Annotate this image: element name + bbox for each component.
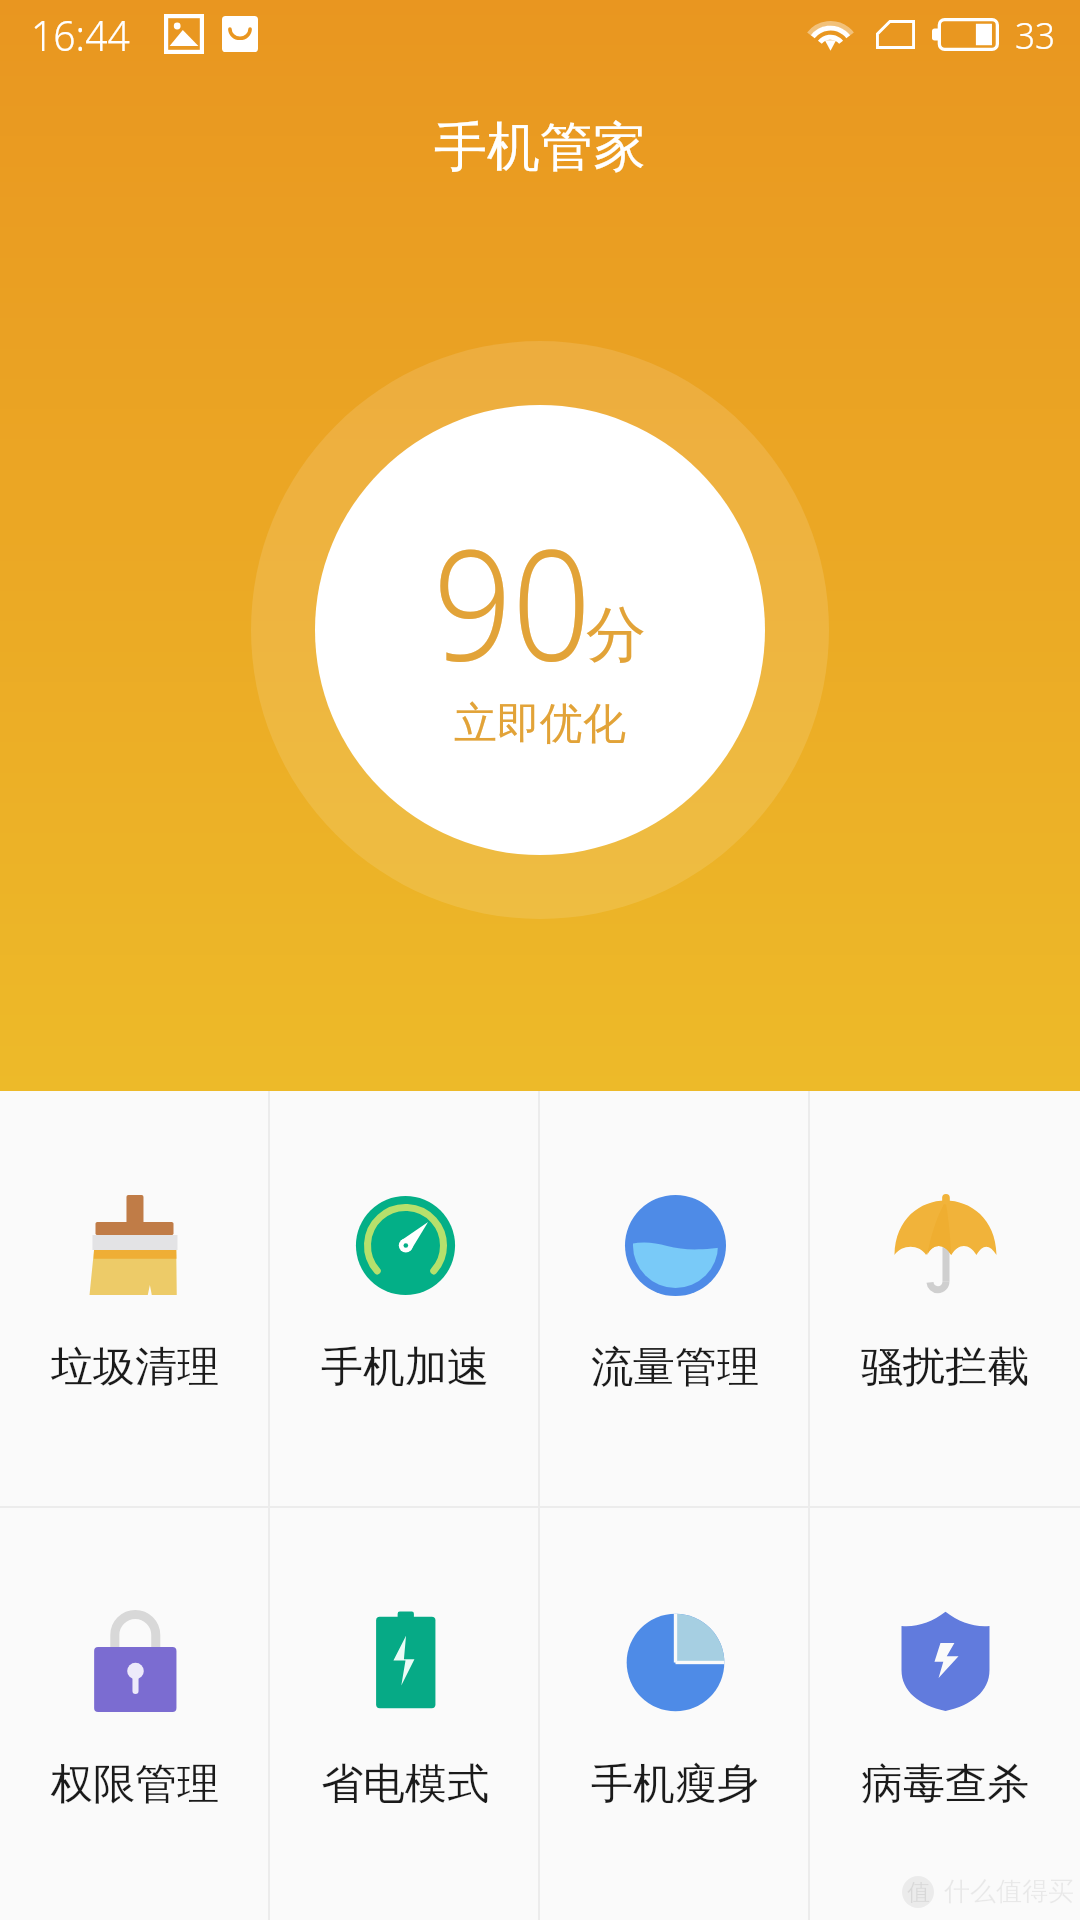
staticText: 什么值得买 [944,1875,1074,1908]
button[interactable]: 权限管理 [0,1508,270,1920]
button[interactable]: 骚扰拦截 [810,1091,1080,1506]
staticText: 33 [1015,9,1056,59]
staticText: 省电模式 [321,1758,489,1811]
button[interactable]: 手机瘦身 [540,1508,810,1920]
staticText: 90 [433,496,591,704]
button[interactable]: 流量管理 [540,1091,810,1506]
staticText: 垃圾清理 [51,1341,219,1394]
button[interactable]: 90分 立即优化 [315,405,765,855]
staticText: 16:44 [31,6,130,63]
staticText: 流量管理 [591,1341,759,1394]
staticText: 权限管理 [51,1758,219,1811]
staticText: 手机管家 [434,114,646,181]
staticText: 骚扰拦截 [861,1341,1029,1394]
staticText: 病毒查杀 [861,1758,1029,1811]
staticText: 手机瘦身 [591,1758,759,1811]
staticText: 值 [907,1878,930,1907]
button[interactable]: 手机加速 [270,1091,540,1506]
button[interactable]: 垃圾清理 [0,1091,270,1506]
button[interactable]: 病毒查杀 [810,1508,1080,1920]
staticText: 分 [586,597,646,673]
staticText: 手机加速 [321,1341,489,1394]
staticText: 立即优化 [454,697,626,751]
button[interactable]: 省电模式 [270,1508,540,1920]
